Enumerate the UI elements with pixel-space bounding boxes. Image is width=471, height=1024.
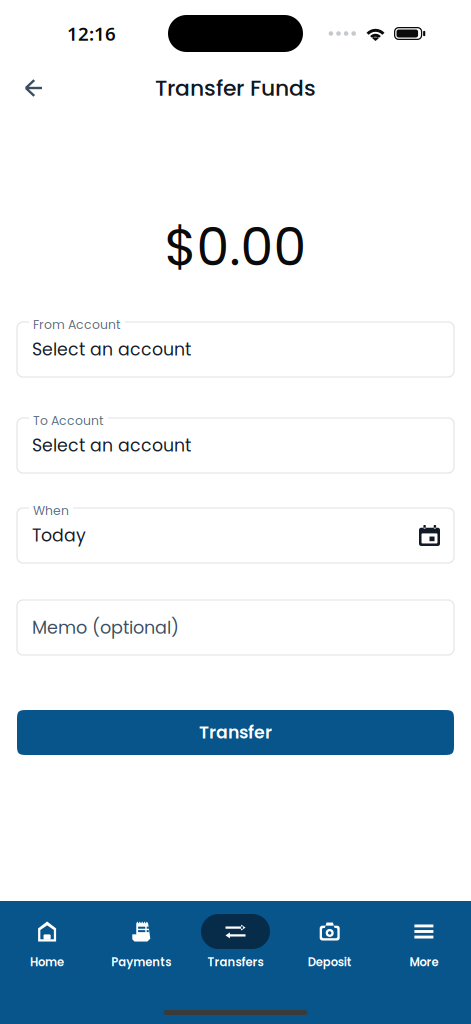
staticText: Select an account xyxy=(32,433,191,458)
staticText: Memo (optional) xyxy=(32,615,179,640)
staticText: 12:16 xyxy=(67,21,116,46)
button[interactable]: Memo (optional) xyxy=(17,600,454,655)
staticText: Transfer xyxy=(199,720,272,745)
button[interactable]: Deposit xyxy=(283,914,377,970)
staticText: To Account xyxy=(33,412,104,429)
staticText: Transfer Funds xyxy=(155,73,316,103)
staticText: Today xyxy=(32,523,86,548)
staticText: $0.00 xyxy=(164,211,306,283)
button[interactable]: Today xyxy=(17,502,454,563)
staticText: Deposit xyxy=(308,954,352,970)
button[interactable]: Back xyxy=(0,67,56,108)
button[interactable]: Transfer xyxy=(17,710,454,755)
button[interactable]: Select an account xyxy=(17,316,454,377)
button[interactable]: Home xyxy=(0,914,94,970)
staticText: From Account xyxy=(33,316,121,333)
staticText: When xyxy=(33,502,69,519)
button[interactable]: Transfers xyxy=(188,914,283,970)
button[interactable]: Payments xyxy=(94,914,188,970)
staticText: Payments xyxy=(111,954,171,970)
button[interactable]: More xyxy=(377,914,471,970)
staticText: More xyxy=(409,954,438,970)
staticText: Select an account xyxy=(32,337,191,362)
staticText: Transfers xyxy=(207,954,263,970)
staticText: Home xyxy=(30,954,64,970)
button[interactable]: Select an account xyxy=(17,412,454,473)
